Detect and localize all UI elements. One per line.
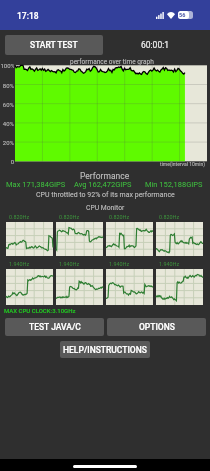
staticText: 0.820Hz [159, 214, 180, 220]
button[interactable]: OPTIONS [107, 318, 206, 336]
staticText: CPU throttled to 92% of its max performa… [36, 191, 175, 199]
staticText: START TEST [30, 40, 78, 50]
staticText: 0.820Hz [59, 214, 80, 220]
staticText: CPU Monitor [86, 204, 125, 212]
staticText: 1.940Hz [59, 261, 80, 267]
staticText: HELP/INSTRUCTIONS [63, 345, 147, 355]
staticText: Avg 162,472GIPS [74, 180, 132, 189]
staticText: 1.940Hz [109, 261, 130, 267]
staticText: time(interval 10min) [160, 161, 205, 167]
staticText: 0 [0, 158, 14, 165]
staticText: 1.940Hz [9, 261, 30, 267]
staticText: 80% [0, 82, 14, 89]
staticText: 56 [179, 12, 186, 18]
staticText: 100% [0, 62, 14, 69]
button[interactable]: TEST JAVA/C [5, 318, 104, 336]
staticText: OPTIONS [139, 322, 175, 332]
button[interactable]: START TEST [5, 35, 103, 55]
staticText: 60:00:1 [141, 40, 170, 50]
button[interactable]: HELP/INSTRUCTIONS [60, 341, 150, 358]
staticText: 20% [0, 139, 14, 146]
staticText: Max 171,384GIPS [6, 180, 66, 189]
staticText: 40% [0, 120, 14, 127]
staticText: 1.940Hz [159, 261, 180, 267]
staticText: 60% [0, 101, 14, 108]
staticText: 0.820Hz [9, 214, 30, 220]
staticText: Performance [80, 171, 130, 181]
staticText: 17:18 [17, 11, 39, 21]
staticText: MAX CPU CLOCK:3.10GHz [4, 307, 76, 314]
staticText: Min 152,188GIPS [145, 180, 203, 189]
staticText: 0.820Hz [109, 214, 130, 220]
staticText: performance over time graph [70, 58, 154, 66]
staticText: TEST JAVA/C [29, 322, 81, 332]
